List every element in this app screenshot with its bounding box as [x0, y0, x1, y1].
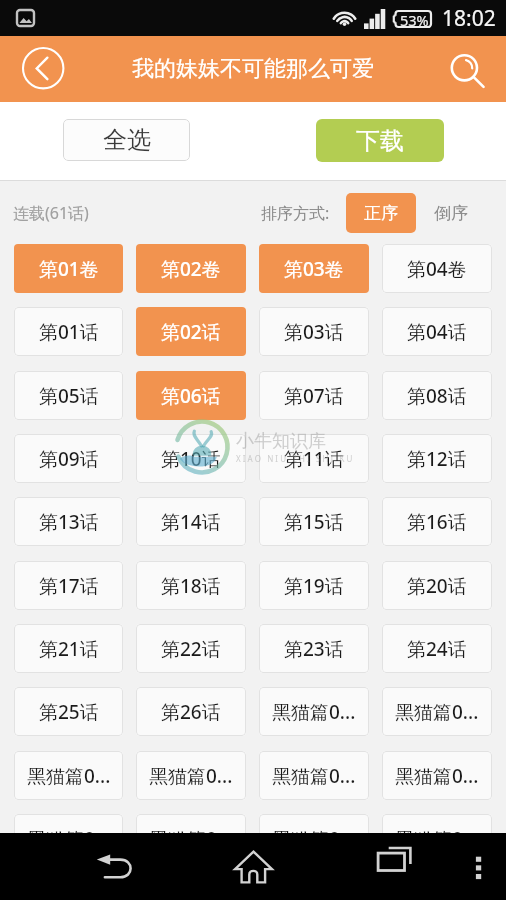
button[interactable]: 正序	[346, 193, 416, 233]
button[interactable]: 第02卷	[136, 244, 246, 293]
staticText: 第18话	[161, 573, 221, 599]
staticText: 第16话	[407, 509, 467, 535]
button[interactable]: 第01话	[14, 307, 123, 356]
staticText: 第01卷	[39, 256, 99, 282]
staticText: 第04话	[407, 319, 467, 345]
staticText: 第03话	[284, 319, 344, 345]
staticText: 黑猫篇0...	[149, 826, 233, 852]
staticText: 下载	[356, 126, 404, 156]
staticText: 第08话	[407, 383, 467, 409]
staticText: 倒序	[434, 203, 468, 224]
button[interactable]: 第17话	[14, 561, 123, 610]
button[interactable]: 全选	[63, 119, 190, 161]
staticText: 第15话	[284, 509, 344, 535]
button[interactable]: 第01卷	[14, 244, 123, 293]
staticText: 第20话	[407, 573, 467, 599]
button[interactable]: 第04卷	[382, 244, 492, 293]
button[interactable]: 黑猫篇0...	[382, 814, 492, 863]
staticText: 黑猫篇0...	[27, 763, 111, 789]
button[interactable]: Home	[232, 845, 276, 889]
staticText: 第13话	[39, 509, 99, 535]
staticText: 全选	[103, 125, 151, 155]
button[interactable]: 第03卷	[259, 244, 369, 293]
button[interactable]: 黑猫篇0...	[259, 687, 369, 736]
button[interactable]: 第07话	[259, 371, 369, 420]
button[interactable]: 倒序	[428, 193, 474, 233]
button[interactable]: Search	[446, 47, 488, 89]
staticText: 黑猫篇0...	[272, 826, 356, 852]
button[interactable]: 第08话	[382, 371, 492, 420]
staticText: 排序方式:	[261, 202, 330, 224]
button[interactable]: 黑猫篇0...	[136, 814, 246, 863]
staticText: 第07话	[284, 383, 344, 409]
button[interactable]: Recents	[370, 840, 416, 886]
staticText: 小牛知识库	[236, 430, 326, 453]
button[interactable]: 第04话	[382, 307, 492, 356]
staticText: 18:02	[442, 4, 496, 33]
staticText: 第14话	[161, 509, 221, 535]
button[interactable]: Back	[21, 46, 65, 90]
button[interactable]: 第20话	[382, 561, 492, 610]
staticText: 第24话	[407, 636, 467, 662]
staticText: 第26话	[161, 699, 221, 725]
staticText: 第03卷	[284, 256, 344, 282]
staticText: 第19话	[284, 573, 344, 599]
button[interactable]: 第11话	[259, 434, 369, 483]
button[interactable]: 第02话	[136, 307, 246, 356]
button[interactable]: 黑猫篇0...	[136, 751, 246, 800]
button[interactable]: 黑猫篇0...	[382, 687, 492, 736]
staticText: 第05话	[39, 383, 99, 409]
button[interactable]: 黑猫篇0...	[14, 814, 123, 863]
button[interactable]: 黑猫篇0...	[382, 751, 492, 800]
staticText: 第09话	[39, 446, 99, 472]
staticText: 黑猫篇0...	[272, 763, 356, 789]
button[interactable]: 黑猫篇0...	[259, 814, 369, 863]
button[interactable]: 第14话	[136, 497, 246, 546]
staticText: 黑猫篇0...	[272, 699, 356, 725]
staticText: 第11话	[284, 446, 344, 472]
button[interactable]: 黑猫篇0...	[14, 751, 123, 800]
button[interactable]: 黑猫篇0...	[259, 751, 369, 800]
button[interactable]: More options	[464, 847, 494, 877]
button[interactable]: Back	[93, 850, 133, 890]
staticText: 第25话	[39, 699, 99, 725]
button[interactable]: 第13话	[14, 497, 123, 546]
staticText: 黑猫篇0...	[27, 826, 111, 852]
staticText: 第12话	[407, 446, 467, 472]
staticText: 第17话	[39, 573, 99, 599]
staticText: 正序	[364, 203, 398, 224]
staticText: 第23话	[284, 636, 344, 662]
button[interactable]: 第03话	[259, 307, 369, 356]
button[interactable]: 第10话	[136, 434, 246, 483]
button[interactable]: 第05话	[14, 371, 123, 420]
staticText: 第02话	[161, 319, 221, 345]
staticText: XIAO NIU ZHI SHI KU	[236, 453, 355, 464]
button[interactable]: 第23话	[259, 624, 369, 673]
button[interactable]: 第22话	[136, 624, 246, 673]
button[interactable]: 第26话	[136, 687, 246, 736]
button[interactable]: 第09话	[14, 434, 123, 483]
staticText: 第04卷	[407, 256, 467, 282]
staticText: 第01话	[39, 319, 99, 345]
button[interactable]: 第12话	[382, 434, 492, 483]
staticText: 第22话	[161, 636, 221, 662]
button[interactable]: 下载	[316, 119, 444, 162]
staticText: 我的妹妹不可能那么可爱	[132, 55, 374, 83]
staticText: 黑猫篇0...	[395, 699, 479, 725]
staticText: 53%	[400, 10, 429, 28]
button[interactable]: 第21话	[14, 624, 123, 673]
button[interactable]: 第16话	[382, 497, 492, 546]
button[interactable]: 第18话	[136, 561, 246, 610]
button[interactable]: 第24话	[382, 624, 492, 673]
staticText: 第06话	[161, 383, 221, 409]
staticText: 连载(61话)	[13, 202, 89, 224]
staticText: 第21话	[39, 636, 99, 662]
staticText: 第10话	[161, 446, 221, 472]
staticText: 黑猫篇0...	[395, 763, 479, 789]
button[interactable]: 第15话	[259, 497, 369, 546]
button[interactable]: 第19话	[259, 561, 369, 610]
button[interactable]: 第25话	[14, 687, 123, 736]
staticText: 黑猫篇0...	[395, 826, 479, 852]
staticText: 第02卷	[161, 256, 221, 282]
button[interactable]: 第06话	[136, 371, 246, 420]
